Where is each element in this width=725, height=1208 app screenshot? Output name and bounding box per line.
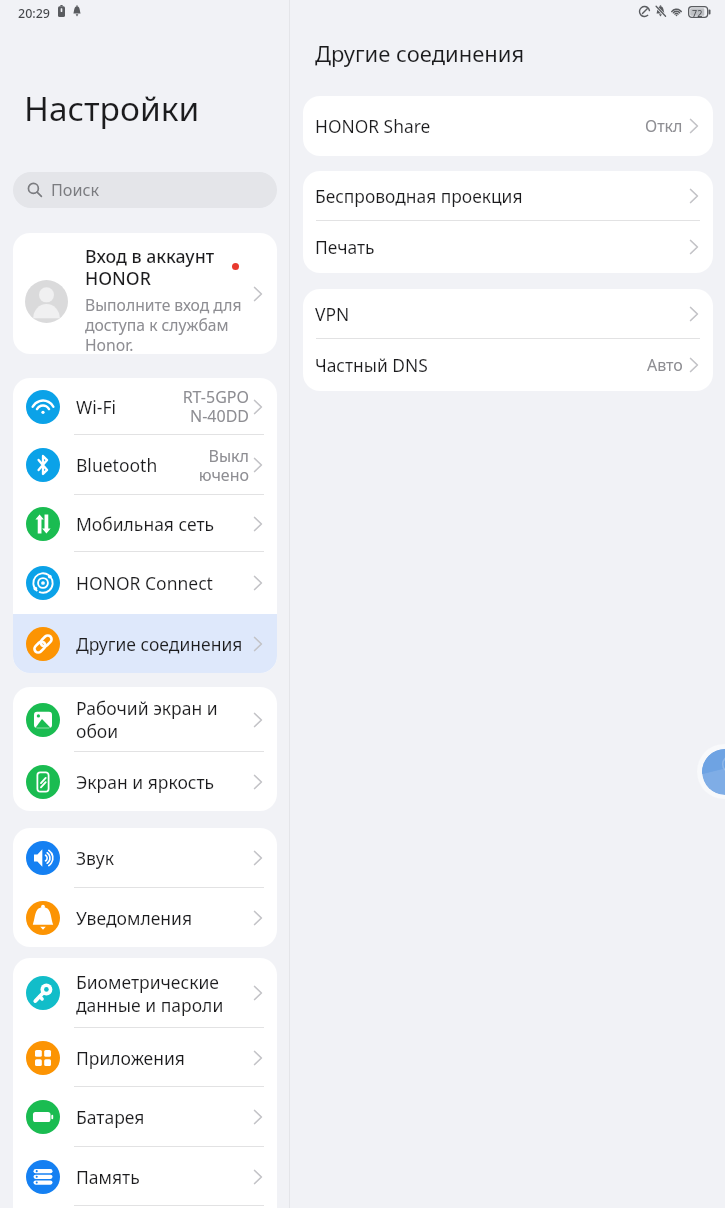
- button[interactable]: Рабочий экран и обои: [13, 687, 277, 752]
- button[interactable]: Частный DNS: [303, 339, 713, 391]
- staticText: Батарея: [76, 1105, 254, 1129]
- staticText: 20:29: [18, 5, 51, 22]
- staticText: Поиск: [51, 179, 100, 201]
- button[interactable]: HONOR Share: [303, 96, 713, 156]
- staticText: HONOR Share: [315, 114, 645, 138]
- staticText: Вход в аккаунт HONOR: [85, 244, 215, 291]
- staticText: Экран и яркость: [76, 770, 254, 794]
- staticText: VPN: [315, 302, 691, 326]
- button[interactable]: Батарея: [13, 1087, 277, 1147]
- staticText: Выполните вход для доступа к службам Hon…: [85, 294, 247, 354]
- button[interactable]: Беспроводная проекция: [303, 171, 713, 221]
- staticText: Печать: [315, 235, 691, 259]
- staticText: Приложения: [76, 1046, 254, 1070]
- button[interactable]: Звук: [13, 828, 277, 888]
- button[interactable]: Floating assistant ball: [697, 744, 725, 799]
- button[interactable]: Биометрические данные и пароли: [13, 958, 277, 1028]
- staticText: Звук: [76, 846, 254, 870]
- staticText: Авто: [647, 354, 683, 376]
- button[interactable]: Печать: [303, 221, 713, 273]
- button[interactable]: HONOR Connect: [13, 552, 277, 614]
- staticText: RT-5GPO N-40DD: [179, 386, 249, 427]
- button[interactable]: Память: [13, 1147, 277, 1206]
- button[interactable]: Мобильная сеть: [13, 495, 277, 552]
- staticText: Другие соединения: [76, 632, 254, 656]
- staticText: Мобильная сеть: [76, 512, 254, 536]
- button[interactable]: Уведомления: [13, 888, 277, 947]
- button[interactable]: Экран и яркость: [13, 752, 277, 811]
- staticText: Беспроводная проекция: [315, 184, 691, 208]
- staticText: Выкл ючено: [193, 445, 249, 486]
- staticText: HONOR Connect: [76, 571, 254, 595]
- staticText: Уведомления: [76, 906, 254, 930]
- button[interactable]: Поиск: [13, 172, 277, 208]
- staticText: Bluetooth: [76, 453, 166, 477]
- button[interactable]: Вход в аккаунт HONOR: [13, 233, 277, 354]
- staticText: Другие соединения: [315, 38, 525, 68]
- staticText: Настройки: [24, 85, 200, 131]
- staticText: Wi-Fi: [76, 395, 166, 419]
- button[interactable]: Приложения: [13, 1028, 277, 1087]
- button[interactable]: Другие соединения: [13, 614, 277, 673]
- staticText: Откл: [645, 115, 683, 137]
- staticText: Память: [76, 1165, 254, 1189]
- staticText: 72: [692, 7, 703, 19]
- staticText: Частный DNS: [315, 353, 647, 377]
- button[interactable]: Bluetooth: [13, 435, 277, 495]
- staticText: Рабочий экран и обои: [76, 696, 254, 743]
- staticText: Биометрические данные и пароли: [76, 970, 254, 1017]
- button[interactable]: VPN: [303, 289, 713, 339]
- button[interactable]: Wi-Fi: [13, 378, 277, 435]
